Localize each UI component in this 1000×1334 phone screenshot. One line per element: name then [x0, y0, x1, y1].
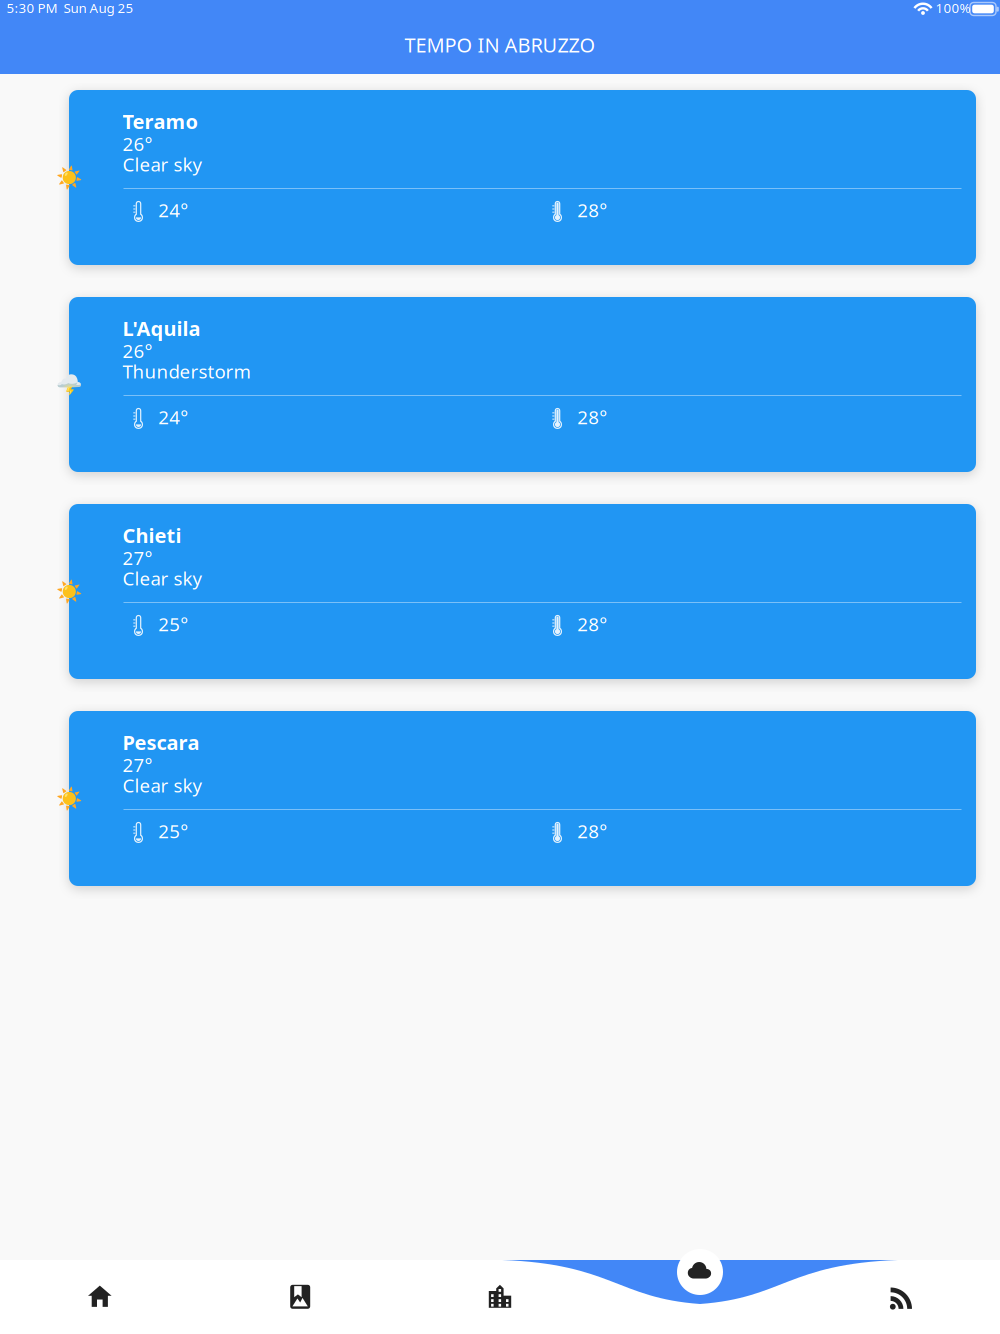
staticText: 26° — [122, 131, 152, 156]
staticText: 28° — [577, 198, 607, 222]
staticText: 28° — [577, 405, 607, 429]
button[interactable]: Pescara — [69, 711, 976, 886]
staticText: ☀️ — [55, 580, 82, 604]
staticText: 5:30 PM — [6, 0, 57, 17]
staticText: 28° — [577, 612, 607, 636]
staticText: 25° — [158, 612, 188, 636]
button[interactable]: Home — [0, 1260, 200, 1334]
staticText: 25° — [158, 819, 188, 843]
staticText: 100% — [935, 0, 970, 17]
staticText: 26° — [122, 338, 152, 363]
button[interactable]: L'Aquila — [69, 297, 976, 472]
staticText: Pescara — [122, 729, 199, 755]
staticText: 🌩️ — [55, 373, 82, 397]
staticText: ☀️ — [55, 166, 82, 190]
staticText: Chieti — [122, 522, 181, 548]
staticText: 27° — [122, 545, 152, 570]
staticText: Clear sky — [122, 566, 202, 591]
button[interactable]: Teramo — [69, 90, 976, 265]
button[interactable]: Chieti — [69, 504, 976, 679]
staticText: Clear sky — [122, 152, 202, 177]
staticText: 24° — [158, 405, 188, 429]
staticText: Teramo — [122, 108, 198, 134]
staticText: L'Aquila — [122, 315, 200, 341]
staticText: 24° — [158, 198, 188, 222]
button[interactable]: Cities — [400, 1260, 600, 1334]
staticText: TEMPO IN ABRUZZO — [404, 31, 595, 58]
button[interactable]: Weather — [677, 1249, 723, 1295]
staticText: 27° — [122, 752, 152, 777]
staticText: ☀️ — [55, 787, 82, 811]
staticText: Sun Aug 25 — [63, 0, 133, 17]
staticText: Clear sky — [122, 773, 202, 798]
staticText: 28° — [577, 819, 607, 843]
button[interactable]: News — [800, 1260, 1000, 1334]
staticText: Thunderstorm — [122, 359, 250, 384]
button[interactable]: Saved — [200, 1260, 400, 1334]
